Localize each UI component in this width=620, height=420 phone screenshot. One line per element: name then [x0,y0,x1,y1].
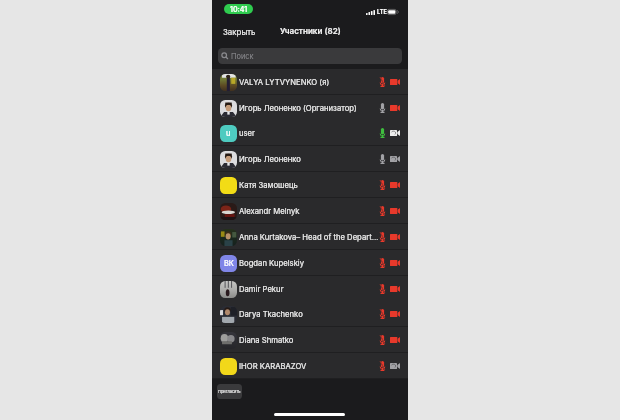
other: Microphone [380,180,385,190]
other: Camera [390,208,400,214]
other: Microphone [380,103,385,113]
staticText: u [226,129,231,138]
staticText: Игорь Леоненко (Организатор) [239,104,357,113]
other: Camera [390,260,400,266]
other: Camera [390,130,400,136]
staticText: Закрыть [223,27,256,37]
other: Microphone [380,128,385,138]
other: Camera [390,234,400,240]
other: Microphone [380,361,385,371]
button[interactable]: Игорь Леоненко (Организатор) [212,95,408,121]
other: Microphone [380,258,385,268]
staticText: ВК [224,259,234,268]
button[interactable]: u [212,120,408,146]
button[interactable]: Damir Pekur [212,276,408,302]
staticText: Участники (82) [280,26,341,36]
staticText: Alexandr Melnyk [239,207,300,216]
other: Microphone [380,77,385,87]
other: Camera [390,182,400,188]
button[interactable]: VALYA LYTVYNENKO (я) [212,69,408,95]
button[interactable]: Alexandr Melnyk [212,198,408,224]
staticText: Игорь Леоненко [239,155,301,164]
other: Camera [390,311,400,317]
staticText: Пригласить [218,389,241,394]
button[interactable]: ВК [212,250,408,276]
staticText: Darya Tkachenko [239,310,303,319]
other: Microphone [380,154,385,164]
staticText: Катя Замошець [239,181,298,190]
other: Microphone [380,206,385,216]
staticText: Bogdan Kupelskiy [239,259,305,268]
staticText: Anna Kurtakova– Head of the Department [239,233,380,242]
other: Microphone [380,284,385,294]
button[interactable]: Пригласить [217,384,242,399]
staticText: Diana Shmatko [239,336,294,345]
other: Camera [390,79,400,85]
other: Microphone [380,335,385,345]
staticText: IHOR KARABAZOV [239,362,307,371]
button[interactable]: Diana Shmatko [212,327,408,353]
staticText: Поиск [231,52,254,61]
other: Microphone [380,232,385,242]
button[interactable]: Darya Tkachenko [212,301,408,327]
staticText: 10:41 [230,5,248,13]
button[interactable]: Игорь Леоненко [212,146,408,172]
staticText: Damir Pekur [239,285,284,294]
other: Camera [390,156,400,162]
button[interactable]: Поиск [218,48,402,64]
other: Camera [390,363,400,369]
staticText: LTE [377,9,387,16]
other: Microphone [380,309,385,319]
other: Camera [390,337,400,343]
button[interactable]: Катя Замошець [212,172,408,198]
staticText: user [239,129,255,138]
button[interactable]: IHOR KARABAZOV [212,353,408,379]
button[interactable]: Anna Kurtakova– Head of the Department [212,224,408,250]
other: Camera [390,105,400,111]
button[interactable]: Закрыть [219,23,260,41]
other: Camera [390,286,400,292]
staticText: VALYA LYTVYNENKO (я) [239,78,330,87]
